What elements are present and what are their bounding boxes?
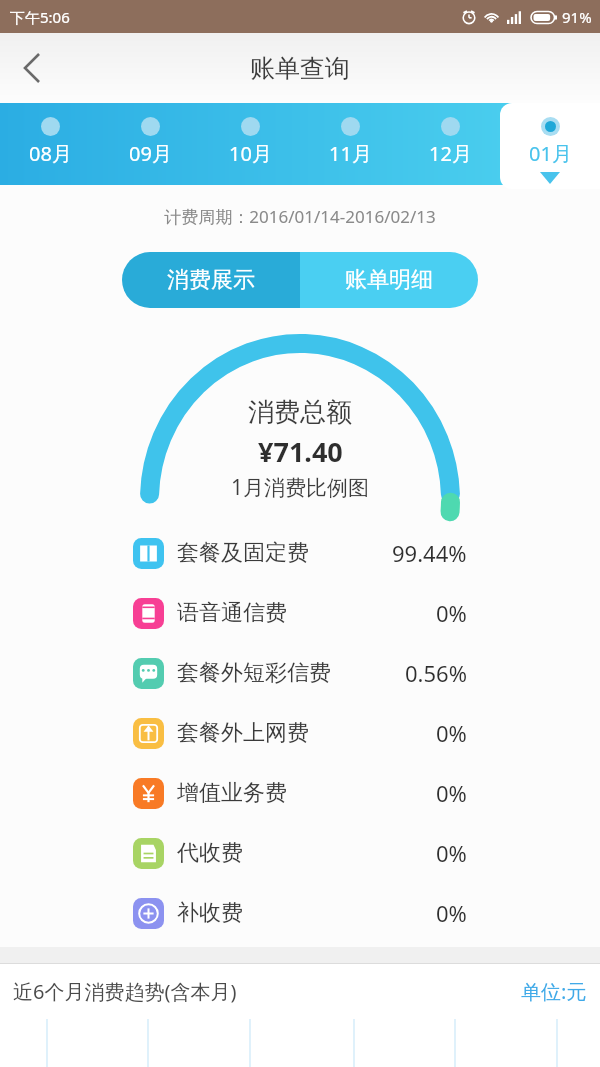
staticText: 10月 (229, 140, 272, 167)
staticText: 0.56% (405, 658, 467, 688)
staticText: 近6个月消费趋势(含本月) (13, 978, 237, 1005)
staticText: 0% (436, 778, 467, 808)
staticText: 套餐外短彩信费 (177, 659, 331, 687)
staticText: 0% (436, 838, 467, 868)
staticText: 消费总额 (248, 396, 352, 429)
staticText: 0% (436, 598, 467, 628)
button[interactable]: 套餐及固定费 (0, 523, 600, 583)
staticText: 09月 (129, 140, 172, 167)
staticText: 99.44% (392, 538, 467, 568)
button[interactable]: 消费展示 (122, 252, 300, 308)
button[interactable]: 增值业务费 (0, 763, 600, 823)
staticText: 01月 (529, 140, 572, 167)
button[interactable]: 10月 (200, 103, 300, 189)
button[interactable]: 代收费 (0, 823, 600, 883)
staticText: ¥71.40 (258, 433, 343, 470)
staticText: 代收费 (177, 839, 243, 867)
staticText: 下午5:06 (10, 7, 70, 27)
button[interactable]: 语音通信费 (0, 583, 600, 643)
button[interactable]: 套餐外上网费 (0, 703, 600, 763)
button[interactable]: 11月 (300, 103, 400, 189)
button[interactable]: 账单明细 (300, 252, 478, 308)
button[interactable]: 12月 (400, 103, 500, 189)
button[interactable]: 补收费 (0, 883, 600, 943)
staticText: 语音通信费 (177, 599, 287, 627)
button[interactable]: 01月 (500, 103, 600, 189)
staticText: 0% (436, 898, 467, 928)
staticText: 账单查询 (250, 53, 350, 84)
staticText: 91% (562, 7, 592, 27)
staticText: 增值业务费 (177, 779, 287, 807)
button[interactable]: 09月 (100, 103, 200, 189)
staticText: 11月 (329, 140, 372, 167)
button[interactable]: 08月 (0, 103, 100, 189)
staticText: 套餐及固定费 (177, 539, 309, 567)
staticText: 0% (436, 718, 467, 748)
button[interactable]: 套餐外短彩信费 (0, 643, 600, 703)
staticText: 08月 (29, 140, 72, 167)
staticText: 12月 (429, 140, 472, 167)
staticText: 套餐外上网费 (177, 719, 309, 747)
staticText: 单位:元 (521, 978, 587, 1005)
staticText: 补收费 (177, 899, 243, 927)
staticText: 计费周期：2016/01/14-2016/02/13 (0, 205, 600, 228)
button[interactable]: Back (0, 33, 64, 103)
staticText: 消费展示 (167, 266, 255, 294)
staticText: 账单明细 (345, 266, 433, 294)
staticText: 1月消费比例图 (231, 473, 370, 502)
